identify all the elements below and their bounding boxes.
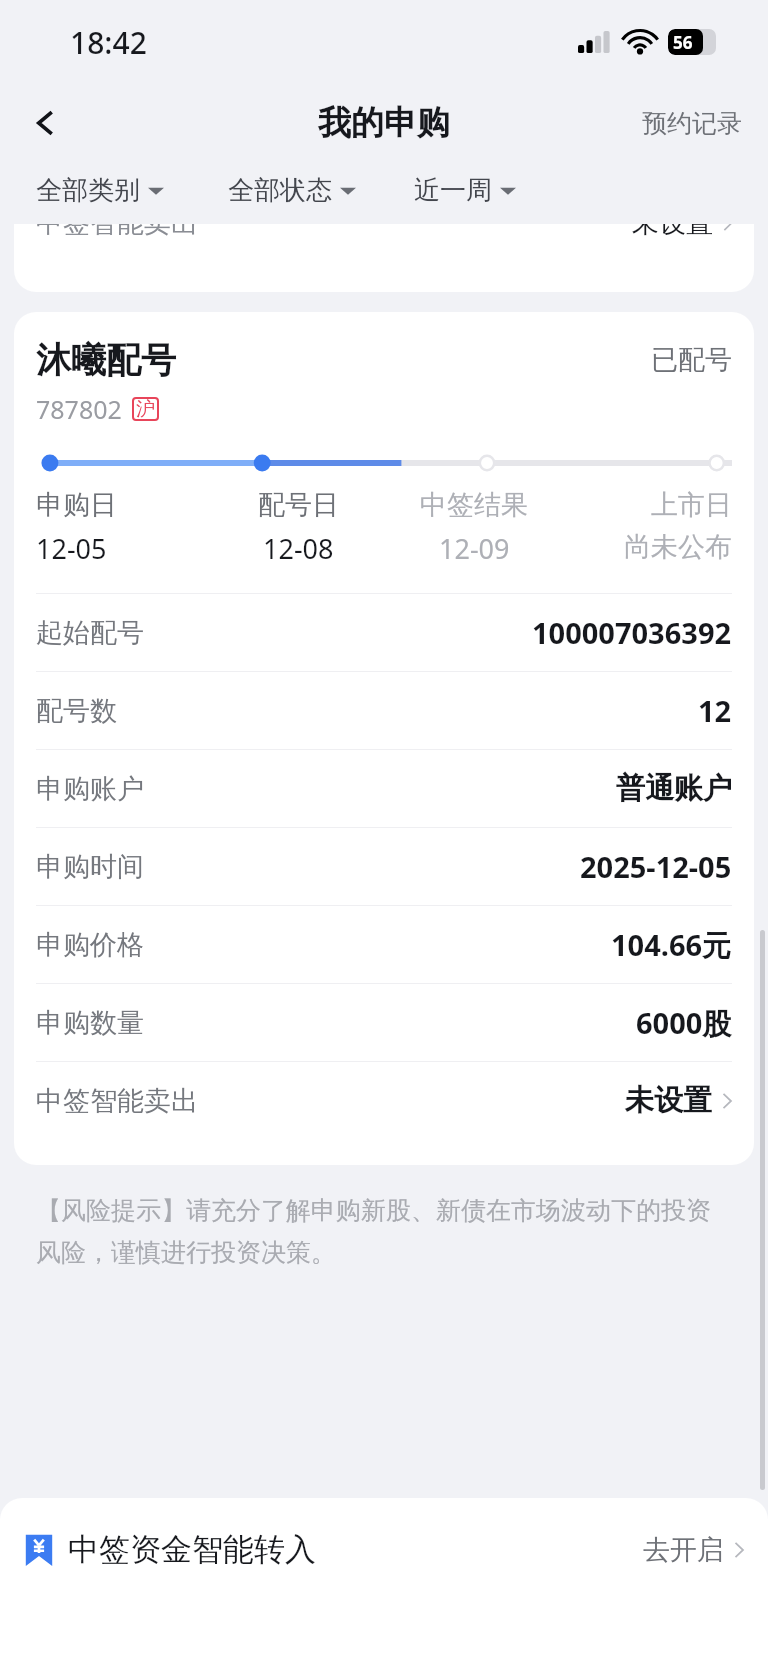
staticText: 【风险提示】请充分了解申购新股、新债在市场波动下的投资风险，谨慎进行投资决策。	[36, 1195, 732, 1269]
staticText: 申购日	[36, 488, 117, 522]
staticText: 12-08	[263, 530, 334, 567]
staticText: 起始配号	[36, 616, 144, 650]
button[interactable]: 全部状态	[228, 174, 356, 207]
staticText: 全部状态	[228, 174, 332, 207]
staticText: 100007036392	[532, 613, 732, 652]
staticText: 尚未公布	[624, 530, 732, 564]
staticText: 中签结果	[420, 488, 528, 522]
staticText: 已配号	[651, 343, 732, 377]
staticText: 近一周	[414, 174, 492, 207]
staticText: 18:42	[70, 22, 147, 63]
staticText: 中签智能卖出	[36, 1084, 198, 1118]
button[interactable]: 中签资金智能转入	[24, 1530, 744, 1569]
staticText: 沐曦配号	[36, 338, 176, 382]
button[interactable]: 近一周	[414, 174, 516, 207]
staticText: 未设置	[625, 1082, 712, 1119]
staticText: 申购账户	[36, 772, 144, 806]
button[interactable]: 全部类别	[36, 174, 164, 207]
staticText: 中签智能卖出	[36, 224, 198, 240]
staticText: 我的申购	[318, 102, 450, 144]
staticText: 申购时间	[36, 850, 144, 884]
staticText: 申购数量	[36, 1006, 144, 1040]
staticText: 787802	[36, 392, 122, 426]
button[interactable]: 中签智能卖出	[14, 224, 754, 292]
button[interactable]: 返回	[18, 95, 74, 151]
staticText: 2025-12-05	[580, 847, 732, 886]
staticText: 配号日	[258, 488, 339, 522]
staticText: 申购价格	[36, 928, 144, 962]
staticText: 配号数	[36, 694, 117, 728]
button[interactable]: 中签智能卖出	[36, 1062, 732, 1139]
staticText: 12-09	[439, 530, 510, 567]
staticText: 12	[698, 691, 732, 730]
staticText: 12-05	[36, 530, 107, 567]
staticText: 中签资金智能转入	[68, 1530, 316, 1569]
staticText: 未设置	[632, 224, 713, 240]
staticText: 104.66元	[611, 925, 732, 965]
staticText: 去开启	[643, 1533, 724, 1567]
staticText: 上市日	[651, 488, 732, 522]
staticText: 沪	[136, 397, 155, 421]
staticText: 全部类别	[36, 174, 140, 207]
staticText: 普通账户	[616, 770, 732, 807]
staticText: 6000股	[636, 1003, 732, 1043]
staticText: 56	[673, 31, 693, 54]
button[interactable]: 预约记录	[642, 108, 742, 139]
